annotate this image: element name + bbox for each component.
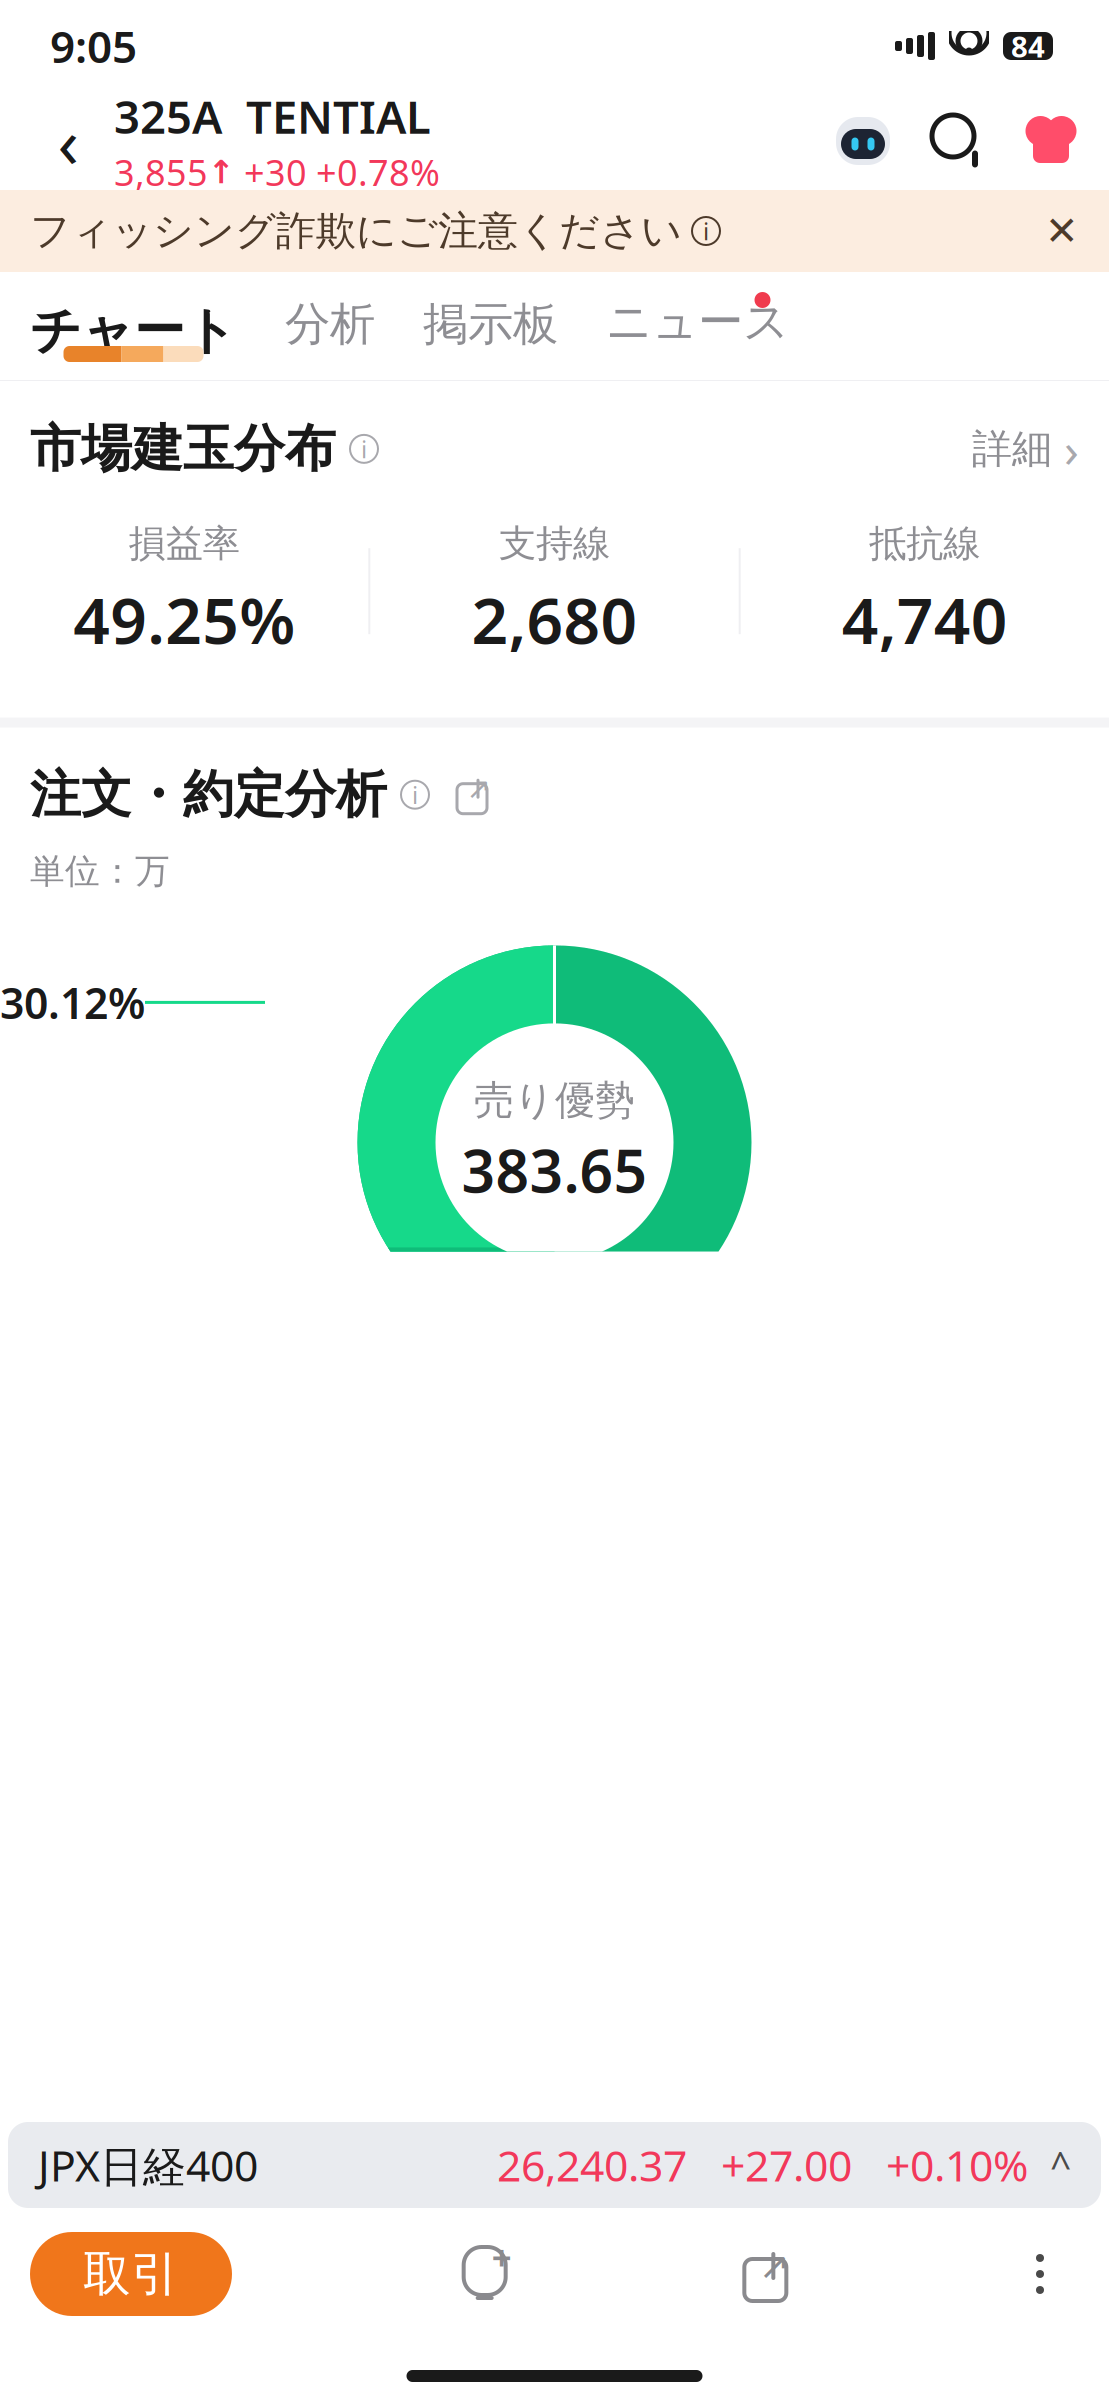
staticText: +27.00	[721, 2137, 852, 2193]
button[interactable]: 掲示板	[375, 296, 558, 360]
staticText: ›	[1064, 417, 1079, 481]
staticText: 3,855	[114, 148, 208, 196]
button[interactable]: 取引	[30, 2232, 232, 2316]
staticText: 30.12%	[0, 974, 145, 1031]
staticText: 2,680	[471, 577, 637, 662]
button[interactable]: Back	[30, 103, 106, 179]
staticText: ↗	[466, 772, 491, 805]
staticText: 取引	[83, 2244, 179, 2303]
staticText: チャート	[30, 300, 237, 362]
button[interactable]: AI Assistant	[833, 111, 893, 171]
staticText: 4,740	[842, 577, 1008, 662]
button[interactable]: Favorite	[987, 115, 1079, 167]
staticText: ニュース	[606, 294, 789, 350]
button[interactable]: Search	[893, 112, 987, 170]
staticText: 9:05	[50, 17, 137, 75]
button[interactable]: Share	[737, 2244, 793, 2304]
staticText: 市場建玉分布	[30, 418, 336, 480]
staticText: 49.25%	[73, 577, 295, 662]
staticText: 単位：万	[30, 850, 170, 892]
staticText: i	[412, 779, 418, 811]
staticText: 抵抗線	[869, 521, 980, 567]
staticText: i	[361, 433, 367, 465]
staticText: 損益率	[129, 521, 240, 567]
staticText: ‹	[57, 95, 78, 187]
staticText: ↗	[759, 2245, 790, 2287]
button[interactable]: 詳細	[972, 417, 1079, 481]
staticText: JPX日経400	[38, 2137, 258, 2193]
staticText: 詳細	[972, 424, 1052, 473]
staticText: 掲示板	[423, 296, 558, 352]
staticText: 分析	[285, 296, 375, 352]
staticText: +30 +0.78%	[235, 148, 440, 196]
staticText: 383.65	[461, 1131, 647, 1209]
button[interactable]: チャート	[30, 300, 237, 360]
button[interactable]: Share	[429, 774, 491, 816]
button[interactable]: More	[1015, 2244, 1065, 2304]
staticText: ↑	[208, 154, 235, 190]
staticText: i	[703, 215, 709, 247]
staticText: 支持線	[499, 521, 610, 567]
staticText: 325A TENTIAL	[114, 86, 431, 146]
button[interactable]: JPX日経400	[8, 2122, 1101, 2208]
button[interactable]: ニュース	[558, 292, 789, 360]
staticText: フィッシング詐欺にご注意ください	[30, 206, 682, 255]
button[interactable]: Add alert	[454, 2242, 516, 2306]
staticText: 注文・約定分析	[30, 764, 387, 826]
staticText: +0.10%	[886, 2137, 1028, 2193]
staticText: 84	[1011, 26, 1045, 65]
staticText: ^	[1050, 2140, 1071, 2190]
button[interactable]: フィッシング詐欺にご注意ください	[0, 190, 1109, 272]
staticText: 売り優勢	[474, 1076, 635, 1125]
button[interactable]: 分析	[237, 296, 375, 360]
staticText: +	[492, 2234, 512, 2280]
staticText: ✕	[1045, 208, 1079, 254]
staticText: 26,240.37	[497, 2137, 687, 2193]
